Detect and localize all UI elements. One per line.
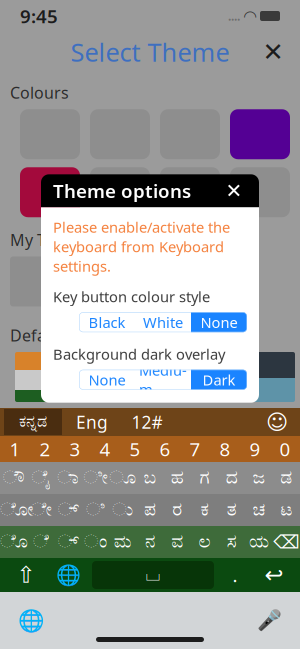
button[interactable]: Close: [256, 35, 290, 69]
button[interactable]: White: [135, 312, 191, 332]
button[interactable]: ್: [54, 494, 82, 526]
staticText: 12#: [131, 410, 162, 433]
button[interactable]: ಪ: [136, 494, 164, 526]
button[interactable]: .: [220, 561, 250, 589]
staticText: ಾ: [57, 469, 79, 487]
button[interactable]: ೇ: [27, 494, 55, 526]
button[interactable]: 8: [210, 433, 240, 465]
button[interactable]: ೈ: [27, 462, 55, 494]
staticText: ್: [58, 533, 79, 551]
staticText: Eng: [76, 410, 108, 433]
button[interactable]: ಹ: [164, 462, 191, 494]
staticText: ಿ: [86, 501, 105, 519]
staticText: ಚ: [253, 501, 266, 519]
button[interactable]: 12#: [122, 409, 172, 435]
button[interactable]: Sunset theme: [111, 352, 199, 402]
staticText: 4: [99, 437, 110, 461]
button[interactable]: ಟ: [273, 494, 300, 526]
button[interactable]: ತ: [218, 494, 245, 526]
staticText: ↩: [264, 562, 283, 588]
button[interactable]: ೂ: [109, 462, 136, 494]
staticText: 7: [189, 437, 200, 461]
button[interactable]: Indian flag theme, selected: [15, 352, 103, 402]
button[interactable]: ೋ: [0, 494, 27, 526]
button[interactable]: ರ: [164, 494, 191, 526]
button[interactable]: 5: [120, 433, 150, 465]
staticText: 🌐: [17, 608, 44, 633]
button[interactable]: 6: [150, 433, 180, 465]
staticText: ತ: [227, 501, 237, 519]
staticText: None: [88, 370, 125, 389]
button[interactable]: Black: [79, 312, 135, 332]
staticText: ಂ: [84, 533, 107, 551]
staticText: ್: [58, 501, 79, 519]
staticText: 🎤: [256, 609, 281, 632]
button[interactable]: Delete: [273, 526, 300, 558]
staticText: ....: [228, 8, 240, 24]
staticText: .: [232, 563, 237, 587]
button[interactable]: Dictate: [252, 603, 286, 637]
button[interactable]: ಾ: [54, 462, 82, 494]
button[interactable]: Return: [256, 561, 292, 589]
button[interactable]: ಕ: [191, 494, 218, 526]
button[interactable]: ಮ: [109, 526, 136, 558]
button[interactable]: 4: [90, 433, 120, 465]
button[interactable]: 2: [30, 433, 60, 465]
button[interactable]: ೊ: [0, 526, 27, 558]
button[interactable]: ೌ: [0, 462, 27, 494]
staticText: ವ: [171, 533, 183, 551]
button[interactable]: ಚ: [245, 494, 273, 526]
button[interactable]: ನ: [136, 526, 164, 558]
button[interactable]: None: [79, 370, 135, 390]
staticText: Colours: [10, 82, 69, 103]
staticText: ⌴: [145, 566, 160, 584]
button[interactable]: ಲ: [191, 526, 218, 558]
button[interactable]: Medium: [135, 370, 191, 390]
staticText: My Themes: [10, 229, 97, 250]
button[interactable]: ು: [109, 494, 136, 526]
button[interactable]: None: [191, 312, 247, 332]
button[interactable]: 1: [0, 433, 30, 465]
button[interactable]: ದ: [218, 462, 245, 494]
button[interactable]: Next keyboard: [50, 561, 86, 589]
button[interactable]: Globe: [14, 603, 48, 637]
staticText: ಗ: [199, 469, 209, 487]
button[interactable]: 7: [180, 433, 210, 465]
button[interactable]: ಿ: [82, 494, 109, 526]
button[interactable]: ಡ: [273, 462, 300, 494]
button[interactable]: Bridge theme: [207, 352, 295, 402]
button[interactable]: ೆ: [27, 526, 55, 558]
button[interactable]: Close theme options: [221, 178, 247, 204]
button[interactable]: ಗ: [191, 462, 218, 494]
staticText: ದ: [226, 469, 238, 487]
button[interactable]: ಂ: [82, 526, 109, 558]
staticText: White: [143, 312, 183, 332]
button[interactable]: Emoji: [260, 409, 294, 435]
button[interactable]: ಯ: [245, 526, 273, 558]
button[interactable]: ಜ: [245, 462, 273, 494]
button[interactable]: ವ: [164, 526, 191, 558]
staticText: 1: [9, 437, 20, 461]
button[interactable]: ಸ: [218, 526, 245, 558]
button[interactable]: 0: [270, 433, 300, 465]
button[interactable]: ೀ: [82, 462, 109, 494]
button[interactable]: ಬ: [136, 462, 164, 494]
button[interactable]: 9: [240, 433, 270, 465]
staticText: 3: [69, 437, 80, 461]
button[interactable]: Space: [92, 561, 214, 589]
button[interactable]: Dark: [191, 370, 247, 390]
staticText: 9: [249, 437, 260, 461]
staticText: 9:45: [20, 4, 58, 28]
button[interactable]: ಕನ್ನಡ: [4, 409, 62, 435]
button[interactable]: Shift: [8, 561, 44, 589]
staticText: Black: [88, 312, 125, 332]
staticText: ು: [112, 501, 133, 519]
staticText: Default Themes: [10, 325, 130, 346]
staticText: 2: [39, 437, 50, 461]
staticText: ಯ: [249, 533, 269, 551]
button[interactable]: 3: [60, 433, 90, 465]
button[interactable]: ್: [54, 526, 82, 558]
button[interactable]: Eng: [62, 409, 122, 435]
staticText: ⇧: [16, 562, 35, 588]
